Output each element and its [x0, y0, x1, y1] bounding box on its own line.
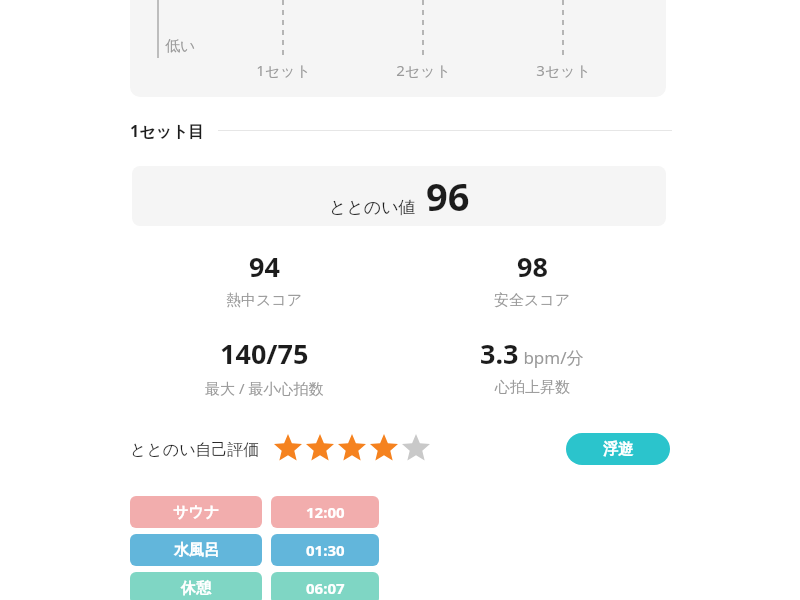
staticText: 01:30 — [306, 540, 345, 560]
staticText: 低い — [165, 37, 196, 56]
staticText: bpm/分 — [519, 346, 584, 369]
staticText: 12:00 — [306, 502, 345, 522]
button[interactable]: 浮遊 — [566, 433, 670, 465]
staticText: ととのい値 — [329, 197, 416, 218]
staticText: 3セット — [536, 60, 591, 80]
staticText: 140/75 — [220, 335, 309, 372]
staticText: 安全スコア — [494, 291, 571, 310]
staticText: 1セット — [256, 60, 311, 80]
staticText: 心拍上昇数 — [495, 378, 570, 397]
staticText: 06:07 — [306, 578, 345, 598]
button[interactable]: 水風呂 — [130, 534, 262, 566]
button[interactable]: サウナ — [130, 496, 262, 528]
button[interactable]: ととのい値 — [132, 166, 666, 226]
staticText: 96 — [426, 170, 470, 222]
staticText: 94 — [249, 248, 280, 285]
staticText: 98 — [517, 248, 548, 285]
button[interactable]: 12:00 — [271, 496, 379, 528]
staticText: 2セット — [396, 60, 451, 80]
staticText: 浮遊 — [603, 440, 633, 459]
button[interactable]: 06:07 — [271, 572, 379, 600]
staticText: サウナ — [173, 503, 220, 522]
staticText: 熱中スコア — [226, 291, 303, 310]
button[interactable]: 休憩 — [130, 572, 262, 600]
staticText: 1セット目 — [130, 120, 205, 142]
staticText: ととのい自己評価 — [130, 440, 260, 460]
staticText: 最大 / 最小心拍数 — [205, 378, 324, 398]
button[interactable]: 01:30 — [271, 534, 379, 566]
staticText: 3.3 — [480, 335, 519, 372]
staticText: 水風呂 — [174, 541, 219, 560]
staticText: 休憩 — [181, 579, 211, 598]
